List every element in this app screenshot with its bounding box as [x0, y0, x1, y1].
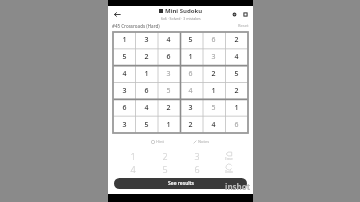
staticText: 6: [211, 35, 216, 45]
staticText: 4: [144, 103, 149, 113]
staticText: 5: [162, 163, 168, 175]
staticText: 5: [211, 103, 216, 113]
button[interactable]: 5: [179, 32, 202, 48]
button[interactable]: 6: [113, 99, 135, 116]
staticText: inshot: [225, 181, 251, 192]
staticText: 5: [188, 35, 193, 45]
button[interactable]: Back: [111, 8, 123, 20]
button[interactable]: 4: [116, 162, 149, 175]
staticText: See results: [168, 180, 194, 187]
staticText: 4: [122, 69, 127, 79]
staticText: 4: [130, 163, 136, 175]
staticText: 3: [122, 86, 127, 96]
staticText: 2: [166, 103, 171, 113]
button[interactable]: Settings: [229, 9, 239, 19]
button[interactable]: 4: [157, 32, 179, 48]
button[interactable]: 3: [202, 48, 225, 65]
button[interactable]: Undo: [213, 162, 245, 175]
button[interactable]: 1: [116, 149, 149, 162]
button[interactable]: 1: [113, 32, 135, 48]
button[interactable]: 3: [181, 149, 213, 162]
button[interactable]: 2: [225, 32, 248, 48]
staticText: 6: [188, 69, 193, 79]
staticText: 1: [234, 103, 239, 113]
button[interactable]: 6: [225, 116, 248, 133]
staticText: 3: [144, 35, 149, 45]
staticText: 2: [144, 52, 149, 62]
staticText: Hint: [156, 139, 164, 144]
staticText: 5: [122, 52, 127, 62]
button[interactable]: More options: [240, 9, 250, 19]
staticText: 3: [194, 150, 200, 162]
button[interactable]: 5: [113, 48, 135, 65]
staticText: 5: [234, 69, 239, 79]
button[interactable]: Erase: [213, 149, 245, 162]
button[interactable]: Notes: [190, 138, 213, 145]
staticText: 5: [144, 120, 149, 130]
button[interactable]: 2: [202, 65, 225, 82]
staticText: 6x6 · Solved · 3 mistakes: [161, 16, 201, 21]
staticText: 6: [122, 103, 127, 113]
button[interactable]: 1: [157, 116, 179, 133]
button[interactable]: 3: [135, 32, 157, 48]
button[interactable]: 4: [225, 48, 248, 65]
staticText: 3: [122, 120, 127, 130]
staticText: 1: [166, 120, 171, 130]
staticText: #45 Crossroads (Hard): [112, 23, 160, 29]
staticText: 6: [144, 86, 149, 96]
button[interactable]: 2: [179, 116, 202, 133]
staticText: 4: [166, 35, 171, 45]
button[interactable]: 4: [113, 65, 135, 82]
staticText: 6: [166, 52, 171, 62]
staticText: 4: [211, 120, 216, 130]
button[interactable]: 5: [225, 65, 248, 82]
button[interactable]: 4: [179, 82, 202, 99]
button[interactable]: Reset: [238, 23, 249, 28]
staticText: 2: [188, 120, 193, 130]
button[interactable]: 6: [202, 32, 225, 48]
staticText: Notes: [198, 139, 210, 144]
staticText: 3: [211, 52, 216, 62]
staticText: 1: [130, 150, 136, 162]
button[interactable]: 6: [181, 162, 213, 175]
staticText: Mini Sudoku: [165, 7, 203, 15]
staticText: Reset: [238, 23, 249, 28]
button[interactable]: 3: [113, 116, 135, 133]
button[interactable]: 2: [225, 82, 248, 99]
button[interactable]: 2: [149, 149, 181, 162]
button[interactable]: See results: [114, 178, 247, 189]
button[interactable]: 1: [202, 82, 225, 99]
staticText: Undo: [225, 170, 233, 174]
button[interactable]: 5: [202, 99, 225, 116]
staticText: 1: [144, 69, 149, 79]
button[interactable]: 6: [179, 65, 202, 82]
button[interactable]: Hint: [148, 138, 167, 145]
staticText: 2: [211, 69, 216, 79]
button[interactable]: 2: [157, 99, 179, 116]
button[interactable]: 3: [157, 65, 179, 82]
staticText: 3: [166, 69, 171, 79]
button[interactable]: 3: [113, 82, 135, 99]
button[interactable]: 4: [135, 99, 157, 116]
button[interactable]: 1: [135, 65, 157, 82]
staticText: 4: [188, 86, 193, 96]
button[interactable]: 6: [135, 82, 157, 99]
staticText: 4: [234, 52, 239, 62]
staticText: 2: [162, 150, 168, 162]
button[interactable]: 6: [157, 48, 179, 65]
staticText: 2: [234, 86, 239, 96]
button[interactable]: 4: [202, 116, 225, 133]
staticText: 1: [211, 86, 216, 96]
button[interactable]: 5: [157, 82, 179, 99]
staticText: 6: [194, 163, 200, 175]
button[interactable]: 1: [179, 48, 202, 65]
button[interactable]: 2: [135, 48, 157, 65]
button[interactable]: 5: [149, 162, 181, 175]
staticText: 6: [234, 120, 239, 130]
staticText: Erase: [225, 157, 233, 161]
staticText: 2: [234, 35, 239, 45]
button[interactable]: 1: [225, 99, 248, 116]
button[interactable]: 5: [135, 116, 157, 133]
staticText: 1: [188, 52, 193, 62]
button[interactable]: 3: [179, 99, 202, 116]
